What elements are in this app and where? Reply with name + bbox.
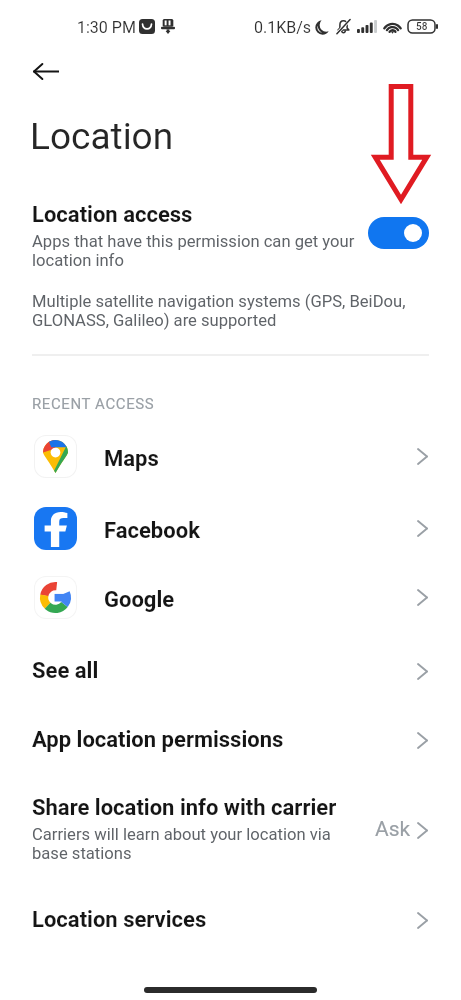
staticText: RECENT ACCESS: [32, 395, 155, 413]
staticText: 0.1KB/s: [254, 18, 312, 37]
staticText: Multiple satellite navigation systems (G…: [32, 292, 412, 330]
button[interactable]: Maps: [0, 421, 461, 491]
staticText: Facebook: [104, 518, 416, 544]
staticText: Maps: [104, 446, 416, 472]
button[interactable]: See all: [0, 636, 461, 706]
staticText: Apps that have this permission can get y…: [32, 232, 362, 270]
button[interactable]: Location services: [0, 885, 461, 955]
staticText: Carriers will learn about your location …: [32, 825, 344, 863]
staticText: 58: [416, 21, 428, 33]
staticText: Location services: [32, 907, 416, 933]
staticText: App location permissions: [32, 727, 416, 753]
staticText: Location: [30, 115, 174, 158]
staticText: See all: [32, 658, 416, 684]
button[interactable]: Location access toggle: [368, 217, 429, 249]
staticText: 1:30 PM: [77, 18, 136, 37]
staticText: Ask: [375, 817, 411, 842]
staticText: Google: [104, 587, 416, 613]
button[interactable]: Location access: [0, 195, 461, 279]
button[interactable]: Back: [24, 49, 68, 93]
button[interactable]: Google: [0, 562, 461, 632]
button[interactable]: Facebook: [0, 493, 461, 563]
staticText: Location access: [32, 202, 193, 228]
button[interactable]: Share location info with carrier: [0, 785, 461, 870]
staticText: Share location info with carrier: [32, 795, 337, 821]
button[interactable]: App location permissions: [0, 705, 461, 775]
